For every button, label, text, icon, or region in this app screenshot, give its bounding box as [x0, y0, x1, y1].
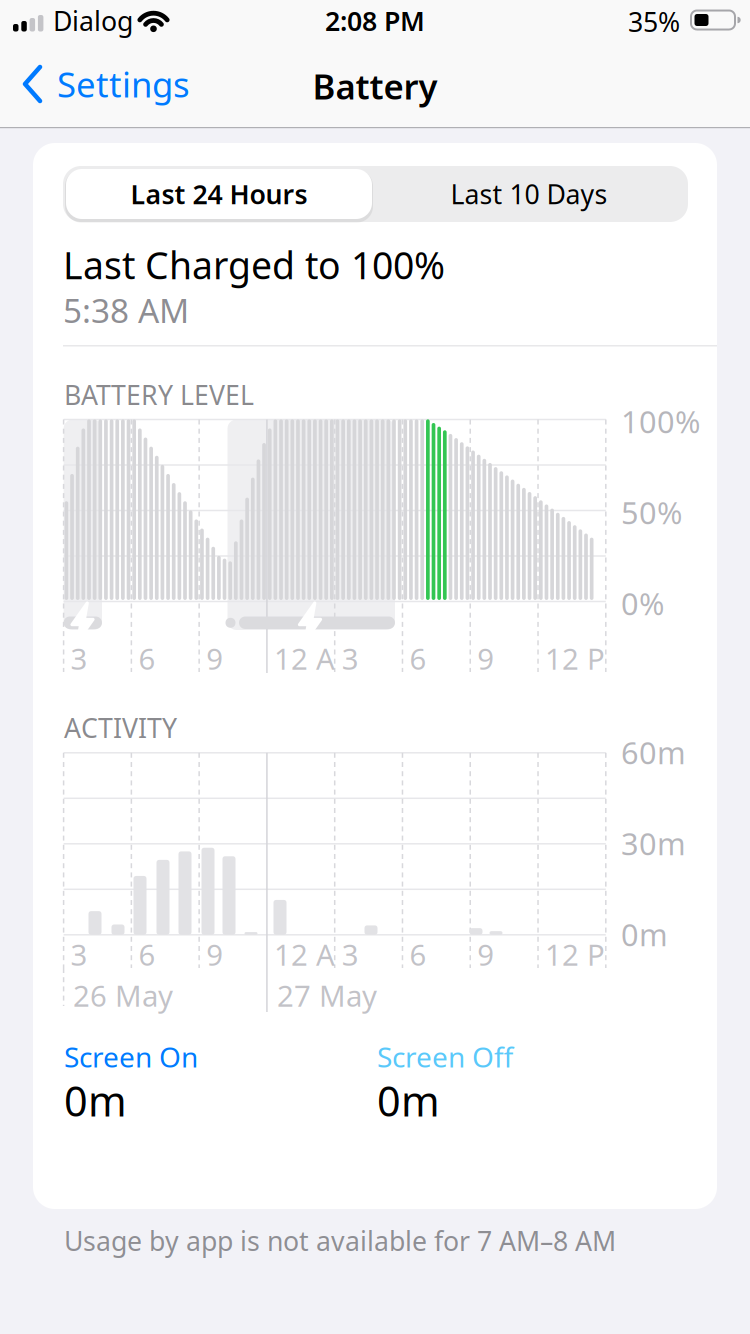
staticText: 35%	[628, 4, 680, 39]
staticText: 30m	[621, 823, 686, 864]
staticText: Screen Off	[377, 1038, 513, 1075]
staticText: 9	[477, 935, 494, 974]
staticText: 6	[138, 935, 155, 974]
staticText: Dialog	[53, 3, 133, 38]
staticText: 2:08 PM	[325, 3, 425, 38]
staticText: 9	[206, 935, 223, 974]
staticText: 6	[138, 639, 155, 678]
staticText: Last 24 Hours	[130, 176, 307, 212]
staticText: Settings	[57, 61, 190, 107]
staticText: 3	[342, 639, 359, 678]
staticText: 6	[409, 935, 426, 974]
staticText: 9	[477, 639, 494, 678]
staticText: Last Charged to 100%	[63, 240, 445, 290]
staticText: 12 P	[545, 935, 605, 974]
staticText: 12 A	[274, 639, 335, 678]
staticText: 60m	[621, 732, 686, 773]
staticText: 5:38 AM	[63, 288, 189, 332]
staticText: Battery	[312, 63, 437, 109]
staticText: Usage by app is not available for 7 AM–8…	[64, 1223, 616, 1258]
staticText: 9	[206, 639, 223, 678]
staticText: Last 10 Days	[450, 176, 607, 212]
staticText: 0m	[621, 914, 668, 955]
staticText: 0%	[621, 583, 664, 624]
staticText: BATTERY LEVEL	[64, 377, 254, 412]
staticText: 100%	[621, 401, 700, 442]
button[interactable]: Last 10 Days	[376, 169, 682, 219]
staticText: ACTIVITY	[64, 710, 177, 745]
staticText: 26 May	[73, 976, 173, 1015]
staticText: 12 P	[545, 639, 605, 678]
staticText: 27 May	[277, 976, 377, 1015]
staticText: 3	[71, 935, 88, 974]
button[interactable]: Back to Settings	[23, 61, 190, 107]
button[interactable]: Last 24 Hours	[66, 169, 372, 219]
staticText: 0m	[377, 1073, 440, 1128]
staticText: 50%	[621, 492, 682, 533]
staticText: 6	[409, 639, 426, 678]
staticText: 3	[342, 935, 359, 974]
staticText: 0m	[64, 1073, 127, 1128]
staticText: Screen On	[64, 1038, 198, 1075]
staticText: 12 A	[274, 935, 335, 974]
staticText: 3	[71, 639, 88, 678]
